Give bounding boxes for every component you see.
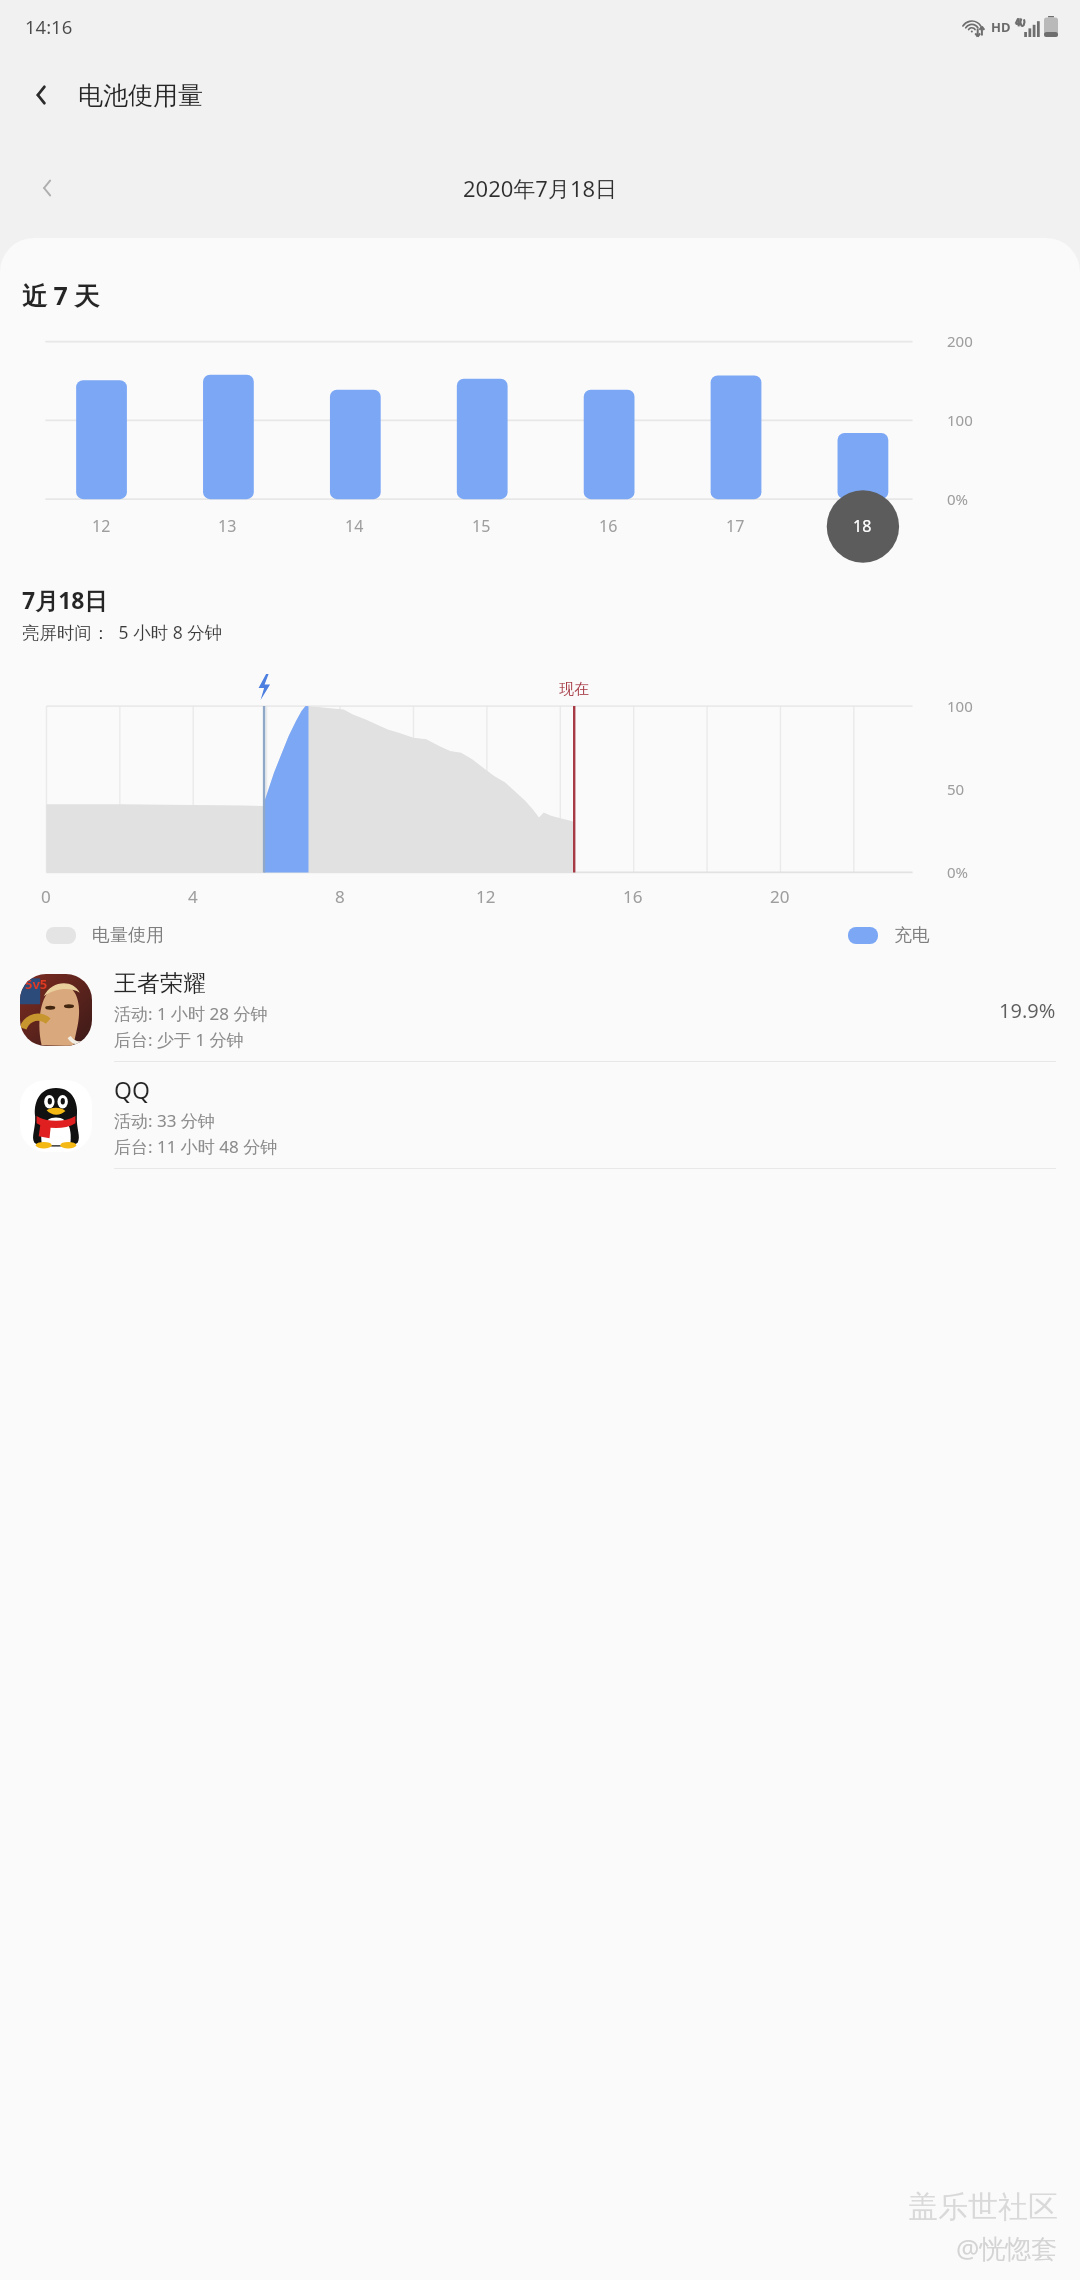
staticText: 20 <box>770 885 790 908</box>
button[interactable]: Back <box>12 66 70 124</box>
staticText: 电池使用量 <box>78 80 203 111</box>
staticText: 2020年7月18日 <box>463 173 618 203</box>
staticText: 4 <box>188 885 198 908</box>
staticText: 200 <box>947 331 973 351</box>
staticText: 18 <box>853 515 872 537</box>
staticText: 50 <box>947 779 965 799</box>
staticText: 7月18日 <box>22 584 108 615</box>
staticText: HD <box>991 18 1011 36</box>
staticText: 盖乐世社区 <box>908 2188 1058 2226</box>
staticText: 15 <box>472 515 491 537</box>
staticText: 电量使用 <box>92 924 164 947</box>
staticText: 现在 <box>559 680 589 699</box>
staticText: 活动: 1 小时 28 分钟 <box>114 1002 268 1025</box>
staticText: 0% <box>947 862 969 882</box>
button[interactable]: 5v5 <box>0 957 1080 1062</box>
staticText: 16 <box>623 885 643 908</box>
staticText: 活动: 33 分钟 <box>114 1109 215 1132</box>
staticText: 100 <box>947 696 973 716</box>
button[interactable]: QQ <box>0 1062 1080 1169</box>
staticText: 后台: 11 小时 48 分钟 <box>114 1135 278 1158</box>
staticText: 充电 <box>894 924 930 947</box>
staticText: 王者荣耀 <box>114 969 206 998</box>
staticText: 亮屏时间： 5 小时 8 分钟 <box>22 620 223 644</box>
staticText: 12 <box>476 885 496 908</box>
staticText: 13 <box>218 515 237 537</box>
staticText: 8 <box>335 885 345 908</box>
staticText: 14 <box>345 515 364 537</box>
staticText: 0% <box>947 489 969 509</box>
staticText: 5v5 <box>25 975 48 993</box>
staticText: 12 <box>92 515 111 537</box>
staticText: QQ <box>114 1074 150 1105</box>
staticText: @恍惚套 <box>956 2230 1058 2266</box>
staticText: 19.9% <box>999 997 1056 1024</box>
staticText: 14:16 <box>25 14 73 39</box>
staticText: 17 <box>726 515 745 537</box>
button[interactable]: Previous day <box>20 161 74 215</box>
staticText: 16 <box>599 515 618 537</box>
staticText: 0 <box>41 885 51 908</box>
staticText: 后台: 少于 1 分钟 <box>114 1028 244 1051</box>
staticText: 近 7 天 <box>22 278 100 312</box>
staticText: 100 <box>947 410 973 430</box>
